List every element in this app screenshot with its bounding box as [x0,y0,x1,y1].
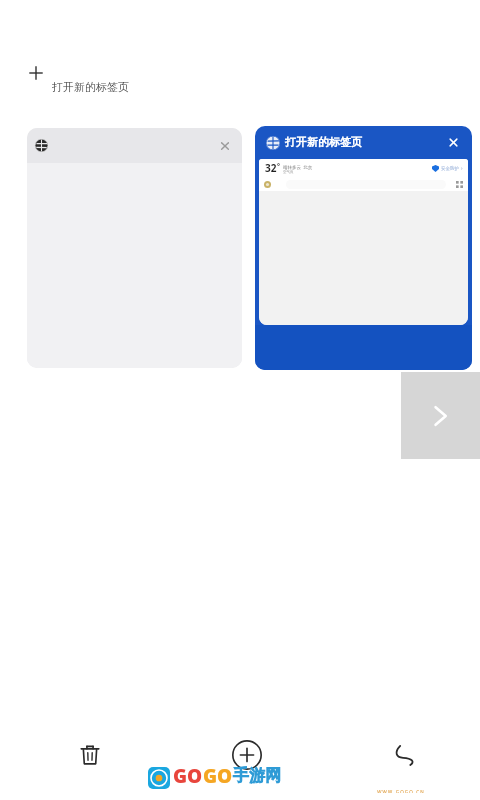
staticText: GO [203,763,233,789]
other: Scan code [456,181,463,188]
staticText: 晴转多云 北京 [283,164,313,170]
button[interactable]: Next [401,372,480,459]
staticText: 打开新的标签页 [285,135,362,149]
staticText: 安全防护 [441,166,459,172]
staticText: GO [173,763,203,789]
button[interactable]: Close tab [218,139,232,153]
button[interactable]: Undo [383,733,427,777]
button[interactable]: 打开新的标签页 [255,126,472,370]
staticText: › [461,165,463,172]
staticText: 手游网 [233,766,281,786]
staticText: W W W . G O G O . C N [173,789,480,793]
button[interactable]: Close tab [27,128,242,368]
staticText: ° [277,162,280,172]
other: New tab [28,65,44,81]
button[interactable]: New tab [22,60,152,100]
button[interactable]: New tab [225,733,269,777]
button[interactable]: Close all tabs [68,733,112,777]
button[interactable]: Close tab [447,136,460,149]
staticText: 32 [265,161,277,175]
staticText: 空气良 [283,170,294,174]
staticText: 打开新的标签页 [52,80,129,94]
